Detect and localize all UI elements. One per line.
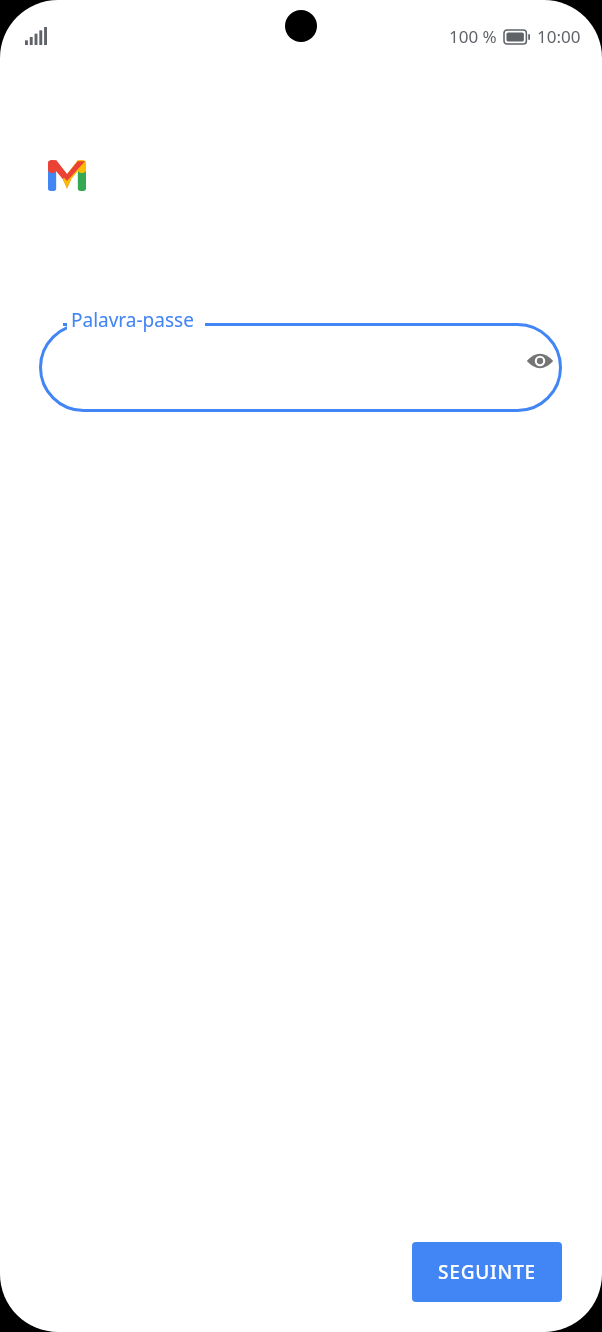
button[interactable]: Mostrar palavra-passe bbox=[518, 339, 562, 383]
button[interactable]: SEGUINTE bbox=[412, 1242, 562, 1302]
staticText: 100 % bbox=[449, 25, 497, 48]
button[interactable]: Palavra-passe bbox=[39, 307, 562, 412]
staticText: 10:00 bbox=[537, 25, 581, 48]
staticText: Palavra-passe bbox=[71, 307, 194, 333]
staticText: SEGUINTE bbox=[438, 1259, 536, 1285]
